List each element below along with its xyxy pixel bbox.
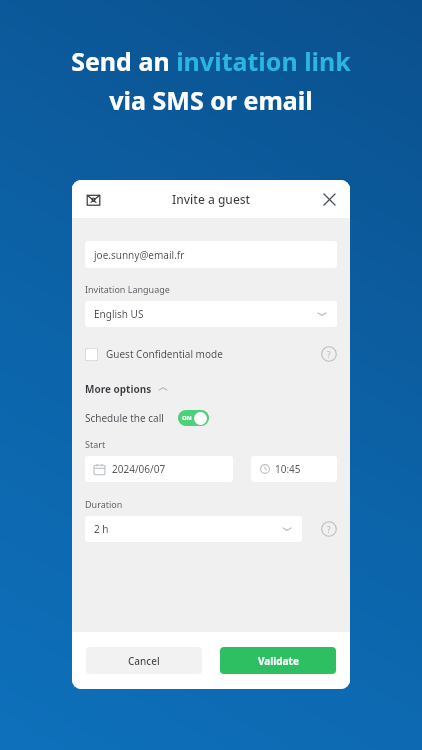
staticText: Send an invitation link: [71, 44, 351, 78]
staticText: 2024/06/07: [112, 462, 166, 476]
staticText: Start: [85, 438, 106, 450]
staticText: via SMS or email: [109, 83, 313, 117]
staticText: Duration: [85, 498, 123, 510]
button[interactable]: joe.sunny@email.fr: [85, 241, 337, 268]
staticText: ON: [182, 414, 192, 422]
button[interactable]: Cancel: [86, 647, 202, 674]
staticText: English US: [94, 307, 144, 321]
button[interactable]: Close: [319, 189, 339, 209]
staticText: ?: [327, 524, 331, 535]
staticText: Cancel: [128, 654, 160, 668]
staticText: Invite a guest: [172, 191, 251, 207]
button[interactable]: Help: [321, 521, 337, 537]
button[interactable]: 10:45: [251, 456, 337, 482]
button[interactable]: English US: [85, 301, 337, 327]
staticText: ?: [327, 349, 331, 360]
staticText: Guest Confidential mode: [106, 347, 223, 361]
staticText: Invitation Language: [85, 283, 170, 295]
staticText: Schedule the call: [85, 411, 164, 425]
staticText: joe.sunny@email.fr: [94, 248, 185, 262]
staticText: 2 h: [94, 522, 109, 536]
button[interactable]: Help: [321, 346, 337, 362]
staticText: More options: [85, 382, 152, 396]
staticText: 10:45: [275, 462, 301, 476]
button[interactable]: Schedule the call toggle: [178, 410, 209, 426]
button[interactable]: 2024/06/07: [85, 456, 233, 482]
button[interactable]: 2 h: [85, 516, 302, 542]
button[interactable]: Guest: [83, 189, 103, 209]
button[interactable]: Validate: [220, 647, 336, 674]
staticText: Validate: [258, 654, 299, 668]
button[interactable]: More options: [85, 382, 169, 396]
button[interactable]: Guest Confidential mode: [85, 347, 223, 361]
